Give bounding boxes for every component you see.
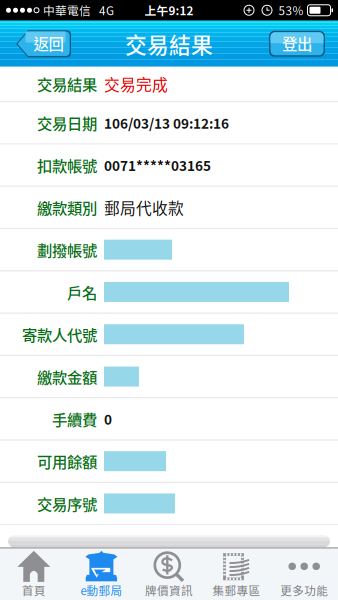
staticText: 0071*****03165 bbox=[104, 155, 211, 175]
staticText: 手續費 bbox=[52, 408, 97, 430]
staticText: 0 bbox=[104, 409, 112, 429]
staticText: e動郵局 bbox=[80, 582, 122, 599]
staticText: 戶名 bbox=[67, 281, 97, 303]
button[interactable]: 牌價資訊 bbox=[135, 549, 203, 600]
staticText: 集郵專區 bbox=[213, 582, 261, 599]
button[interactable]: 返回 bbox=[16, 30, 71, 57]
staticText: 53% bbox=[278, 2, 303, 19]
staticText: 郵局代收款 bbox=[104, 196, 184, 219]
staticText: 106/03/13 09:12:16 bbox=[104, 113, 229, 133]
staticText: 寄款人代號 bbox=[22, 323, 97, 345]
staticText: 交易結果 bbox=[37, 73, 97, 95]
button[interactable]: 首頁 bbox=[0, 549, 68, 600]
button[interactable]: e動郵局 bbox=[68, 549, 135, 600]
staticText: 劃撥帳號 bbox=[37, 238, 97, 261]
staticText: 繳款類別 bbox=[37, 196, 97, 218]
staticText: 返回 bbox=[33, 32, 63, 54]
staticText: 登出 bbox=[282, 32, 312, 54]
staticText: 繳款金額 bbox=[37, 365, 97, 388]
staticText: 可用餘額 bbox=[37, 450, 97, 472]
button[interactable]: 登出 bbox=[269, 31, 325, 57]
staticText: 交易序號 bbox=[37, 492, 97, 514]
staticText: 更多功能 bbox=[280, 582, 328, 599]
staticText: 4G bbox=[99, 2, 114, 19]
button[interactable]: 更多功能 bbox=[270, 549, 338, 600]
button[interactable]: 集郵專區 bbox=[203, 549, 270, 600]
staticText: 扣款帳號 bbox=[37, 154, 97, 176]
staticText: 中華電信 bbox=[43, 2, 91, 19]
staticText: 交易結果 bbox=[125, 28, 213, 59]
staticText: 交易日期 bbox=[37, 112, 97, 134]
staticText: 交易完成 bbox=[104, 72, 168, 95]
staticText: 首頁 bbox=[22, 582, 46, 599]
staticText: 牌價資訊 bbox=[145, 582, 193, 599]
staticText: 上午9:12 bbox=[144, 2, 193, 19]
